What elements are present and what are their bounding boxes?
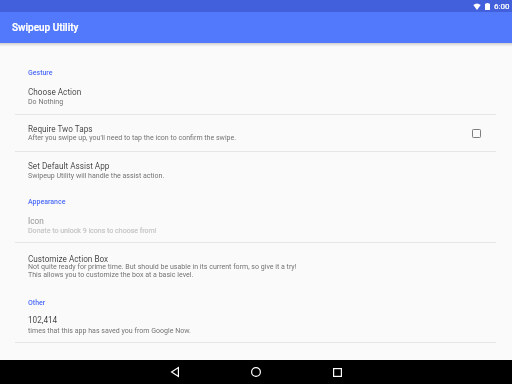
button[interactable]: Require Two Taps	[0, 117, 512, 151]
button[interactable]: Require Two Taps	[466, 123, 486, 143]
button[interactable]: Set Default Assist App	[0, 155, 512, 185]
staticText: Gesture	[28, 69, 53, 77]
staticText: Donate to unlock 9 icons to choose from!	[28, 226, 157, 234]
staticText: Customize Action Box	[28, 254, 109, 264]
staticText: 102,414	[28, 315, 58, 325]
staticText: Icon	[28, 216, 44, 226]
staticText: Swipeup Utility	[12, 22, 79, 34]
staticText: Appearance	[28, 198, 66, 206]
button[interactable]: Icon	[0, 211, 512, 239]
staticText: Not quite ready for prime time. But shou…	[28, 262, 297, 270]
button[interactable]: Home	[244, 360, 268, 384]
button[interactable]: Swipeup Utility	[0, 12, 512, 43]
staticText: After you swipe up, you'll need to tap t…	[28, 133, 237, 141]
staticText: Other	[28, 299, 46, 307]
button[interactable]: Back	[163, 360, 187, 384]
staticText: Require Two Taps	[28, 124, 93, 134]
button[interactable]: Choose Action	[0, 83, 512, 114]
staticText: Do Nothing	[28, 97, 64, 105]
staticText: Set Default Assist App	[28, 161, 110, 171]
button[interactable]: Customize Action Box	[0, 248, 512, 284]
button[interactable]: Recent apps	[325, 360, 349, 384]
staticText: Choose Action	[28, 87, 82, 97]
staticText: 6:00	[494, 2, 510, 11]
staticText: times that this app has saved you from G…	[28, 326, 191, 334]
button[interactable]: 102,414	[0, 310, 512, 340]
staticText: This allows you to customize the box at …	[28, 270, 194, 278]
staticText: Swipeup Utility will handle the assist a…	[28, 171, 165, 179]
